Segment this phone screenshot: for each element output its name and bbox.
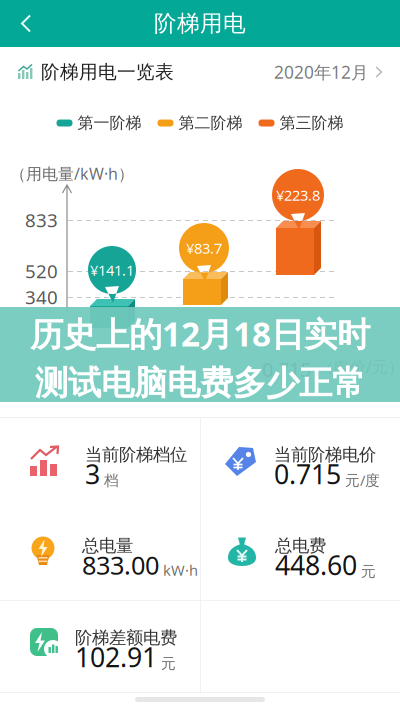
staticText: 当前阶梯电价 [274,444,376,465]
staticText: 3 [85,456,100,492]
button[interactable]: 阶梯差额电费 [0,601,200,692]
button[interactable]: Back [0,0,52,47]
staticText: kW·h [163,560,198,580]
staticText: ¥83.7 [186,238,222,258]
staticText: 第二阶梯 [178,113,242,133]
staticText: 448.60 [275,547,357,583]
staticText: 测试电脑电费多少正常 [35,363,365,404]
staticText: 阶梯用电 [154,10,246,37]
staticText: 元 [361,563,376,581]
staticText: 阶梯用电一览表 [41,60,174,83]
staticText: 833 [25,208,58,232]
button[interactable]: 阶梯用电一览表 [0,47,400,97]
staticText: 2020年12月 [274,60,368,83]
staticText: （用电量/kW·h） [10,163,134,184]
staticText: 总电量 [82,535,133,556]
staticText: ¥223.8 [276,185,320,205]
staticText: 340 [25,285,58,309]
staticText: 历史上的12月18日实时 [30,311,370,356]
staticText: （电价/元） [318,356,400,377]
staticText: 元 [161,655,176,673]
staticText: 102.91 [75,639,157,675]
button[interactable]: 当前阶梯电价 [201,418,400,509]
staticText: 档 [104,472,119,490]
staticText: 833.00 [82,548,159,582]
staticText: ¥141.1 [90,260,134,280]
staticText: 阶梯差额电费 [75,627,177,648]
button[interactable]: 总电量 [0,509,200,600]
staticText: 总电费 [275,535,326,556]
button[interactable]: 当前阶梯档位 [0,418,200,509]
button[interactable]: 总电费 [201,509,400,600]
staticText: 元/度 [345,470,380,490]
staticText: 第一阶梯 [77,113,141,133]
staticText: 0.715 [274,456,341,492]
staticText: 第三阶梯 [279,113,343,133]
staticText: 0.715 [262,356,311,383]
staticText: 520 [25,259,58,283]
staticText: 当前阶梯档位 [85,444,187,465]
